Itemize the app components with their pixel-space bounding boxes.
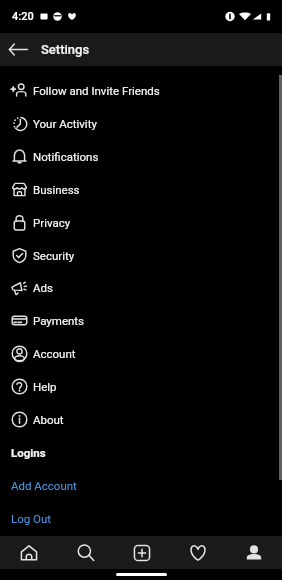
button[interactable]: Add Account: [0, 469, 282, 502]
button[interactable]: Search: [57, 536, 114, 569]
staticText: Ads: [33, 281, 53, 294]
button[interactable]: Log Out: [0, 502, 282, 535]
button[interactable]: Ads: [0, 271, 282, 304]
staticText: Notifications: [33, 150, 99, 163]
button[interactable]: Follow and Invite Friends: [0, 74, 282, 107]
staticText: Settings: [41, 42, 90, 57]
button[interactable]: Back: [0, 33, 36, 66]
staticText: Payments: [33, 314, 85, 327]
staticText: Privacy: [33, 216, 71, 229]
button[interactable]: Business: [0, 173, 282, 206]
button[interactable]: Your Activity: [0, 107, 282, 140]
button[interactable]: Privacy: [0, 206, 282, 239]
staticText: Security: [33, 249, 75, 262]
staticText: Your Activity: [33, 117, 97, 130]
staticText: 4:20: [12, 10, 34, 23]
button[interactable]: Profile: [226, 536, 282, 569]
staticText: Add Account: [11, 479, 77, 492]
button[interactable]: Security: [0, 239, 282, 272]
button[interactable]: Activity: [170, 536, 226, 569]
button[interactable]: Home: [0, 536, 57, 569]
button[interactable]: Notifications: [0, 140, 282, 173]
staticText: Account: [33, 347, 76, 360]
button[interactable]: Account: [0, 337, 282, 370]
staticText: Help: [33, 380, 57, 393]
staticText: Log Out: [11, 512, 52, 525]
staticText: About: [33, 413, 64, 426]
staticText: Business: [33, 183, 80, 196]
staticText: Follow and Invite Friends: [33, 84, 160, 97]
button[interactable]: Payments: [0, 304, 282, 337]
button[interactable]: Help: [0, 370, 282, 403]
staticText: Logins: [11, 446, 46, 459]
button[interactable]: About: [0, 403, 282, 436]
button[interactable]: New Post: [114, 536, 170, 569]
